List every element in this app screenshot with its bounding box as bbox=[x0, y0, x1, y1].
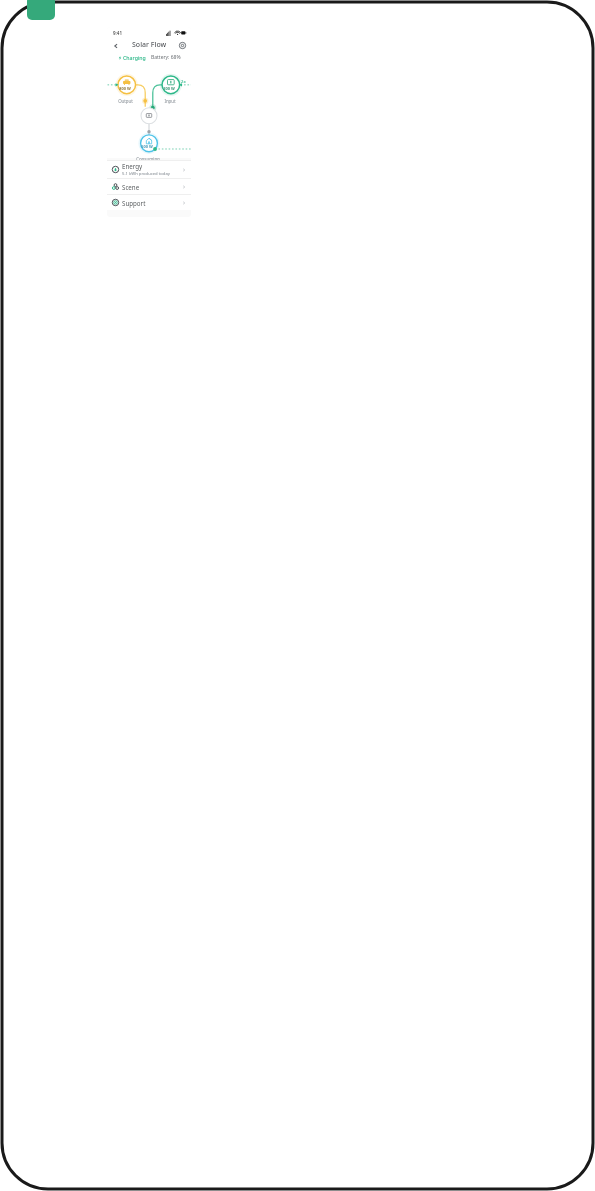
staticText: 300 W bbox=[163, 86, 175, 91]
button[interactable]: Energy bbox=[107, 161, 191, 178]
staticText: Charging bbox=[123, 54, 146, 61]
staticText: 5.1 kWh produced today bbox=[122, 171, 170, 177]
staticText: Input bbox=[164, 98, 176, 104]
staticText: Solar Flow bbox=[132, 40, 167, 50]
staticText: Scene bbox=[122, 183, 140, 191]
staticText: 800 W bbox=[119, 86, 131, 91]
button[interactable]: Support bbox=[107, 195, 191, 210]
staticText: 9:41 bbox=[113, 30, 122, 36]
staticText: Energy bbox=[122, 162, 143, 170]
button[interactable]: Back bbox=[110, 40, 121, 51]
staticText: Consuming bbox=[136, 156, 160, 162]
staticText: Output bbox=[118, 98, 133, 104]
staticText: 500 W bbox=[141, 144, 153, 149]
button[interactable]: Scene bbox=[107, 179, 191, 194]
staticText: 2x bbox=[181, 79, 186, 85]
button[interactable]: Settings bbox=[177, 40, 188, 51]
staticText: Battery: 68% bbox=[151, 54, 181, 61]
staticText: Support bbox=[122, 199, 146, 207]
